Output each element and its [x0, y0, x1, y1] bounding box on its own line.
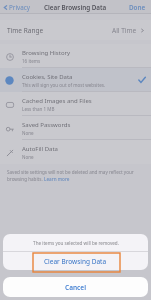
staticText: Saved Passwords — [22, 121, 71, 129]
button[interactable]: Cancel — [3, 277, 148, 297]
staticText: Cached Images and Files — [22, 97, 92, 105]
staticText: None — [22, 130, 34, 136]
button[interactable]: Browsing History — [0, 44, 151, 68]
button[interactable]: Done — [127, 1, 148, 14]
staticText: The items you selected will be removed. — [33, 240, 119, 246]
staticText: Saved site settings will not be deleted … — [7, 169, 134, 175]
button[interactable]: Learn more — [44, 176, 70, 182]
staticText: Privacy — [9, 3, 31, 12]
staticText: browsing habits. — [7, 176, 44, 182]
staticText: AutoFill Data — [22, 145, 58, 153]
staticText: Time Range — [7, 26, 44, 35]
staticText: Cookies, Site Data — [22, 73, 73, 81]
button[interactable]: Clear Browsing Data — [3, 252, 148, 270]
staticText: Clear Browsing Data — [44, 3, 107, 12]
staticText: All Time — [112, 26, 137, 35]
button[interactable]: Time Range — [0, 20, 151, 40]
button[interactable]: Saved Passwords — [0, 116, 151, 140]
button[interactable]: Cookies, Site Data — [0, 68, 151, 92]
staticText: Cancel — [65, 283, 87, 292]
staticText: Browsing History — [22, 49, 71, 57]
button[interactable]: AutoFill Data — [0, 140, 151, 164]
staticText: 16 items — [22, 58, 41, 64]
staticText: Clear Browsing Data — [44, 257, 107, 266]
staticText: None — [22, 154, 34, 160]
staticText: This will sign you out of most websites. — [22, 82, 106, 88]
staticText: Done — [129, 3, 146, 12]
staticText: Less than 1 MB — [22, 106, 55, 112]
button[interactable]: Privacy — [2, 1, 32, 14]
button[interactable]: Cached Images and Files — [0, 92, 151, 116]
